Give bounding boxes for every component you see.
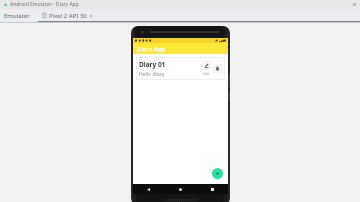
button[interactable]: Close tab: [89, 14, 93, 18]
staticText: Hello diary: [139, 71, 165, 78]
button[interactable]: Edit: [202, 61, 211, 70]
button[interactable]: Diary 01: [136, 57, 225, 80]
staticText: Emulator: [4, 12, 30, 20]
button[interactable]: Back: [145, 186, 152, 193]
button[interactable]: Pixel 2 API 30: [38, 9, 360, 22]
button[interactable]: Home: [177, 186, 184, 193]
staticText: Diary App: [137, 45, 166, 53]
button[interactable]: Emulator: [4, 12, 30, 20]
staticText: Pixel 2 API 30: [49, 12, 87, 20]
staticText: Diary 01: [139, 60, 166, 69]
button[interactable]: Close window: [352, 2, 357, 7]
button[interactable]: Add diary entry: [212, 168, 223, 179]
button[interactable]: Delete: [213, 64, 222, 73]
staticText: Android Emulator - Diary App: [10, 1, 79, 8]
button[interactable]: Recent apps: [209, 186, 216, 193]
staticText: Edit: [203, 71, 210, 76]
